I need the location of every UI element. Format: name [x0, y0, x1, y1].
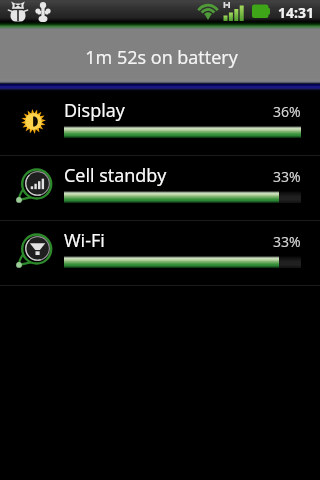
- staticText: 1m 52s on battery: [85, 45, 238, 70]
- staticText: Wi-Fi: [64, 228, 105, 253]
- staticText: Display: [64, 98, 125, 123]
- staticText: Cell standby: [64, 163, 167, 188]
- staticText: 33%: [273, 232, 301, 251]
- staticText: 14:31: [278, 3, 315, 22]
- staticText: 36%: [273, 102, 301, 121]
- button[interactable]: Cell standby: [0, 156, 320, 220]
- button[interactable]: Display: [0, 91, 320, 155]
- button[interactable]: Wi-Fi: [0, 221, 320, 285]
- staticText: 33%: [273, 167, 301, 186]
